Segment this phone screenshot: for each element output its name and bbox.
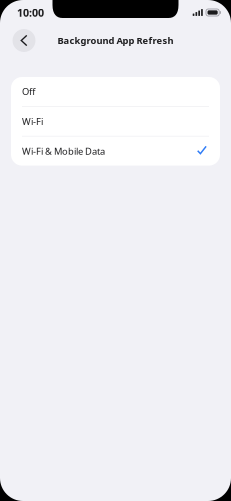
staticText: 10:00	[17, 5, 44, 20]
staticText: Wi-Fi & Mobile Data	[22, 145, 105, 157]
staticText: Background App Refresh	[57, 34, 173, 47]
button[interactable]: Back	[9, 26, 38, 55]
staticText: Wi-Fi	[22, 115, 43, 127]
staticText: Off	[22, 85, 35, 98]
button[interactable]: Wi-Fi & Mobile Data	[11, 137, 220, 166]
button[interactable]: Wi-Fi	[11, 107, 220, 136]
button[interactable]: Off	[11, 77, 220, 106]
